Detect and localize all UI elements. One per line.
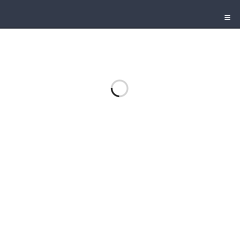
button[interactable]: Menu	[216, 6, 238, 28]
